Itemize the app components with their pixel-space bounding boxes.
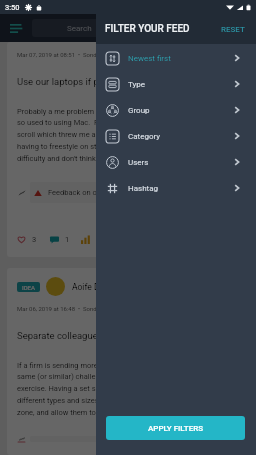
- button[interactable]: Category: [96, 123, 256, 149]
- button[interactable]: IDEA: [7, 268, 249, 455]
- button[interactable]: Group: [96, 97, 256, 123]
- staticText: Newest first: [128, 54, 171, 63]
- staticText: APPLY FILTERS: [148, 424, 204, 433]
- staticText: RESET: [221, 25, 245, 34]
- staticText: 3: [32, 235, 37, 244]
- staticText: 1: [65, 235, 70, 244]
- button[interactable]: Feedback on our pro: [30, 436, 241, 442]
- button[interactable]: APPLY FILTERS: [106, 416, 245, 440]
- button[interactable]: Users: [96, 149, 256, 175]
- button[interactable]: Newest first: [96, 45, 256, 71]
- staticText: Users: [128, 158, 149, 167]
- staticText: 3:50: [5, 3, 20, 12]
- button[interactable]: Mar 07, 2019 at 08:51 • Sonder: [7, 42, 249, 257]
- button[interactable]: Open navigation menu: [6, 18, 26, 38]
- button[interactable]: Feedback on our pro: [30, 182, 241, 203]
- staticText: Type: [128, 80, 146, 89]
- staticText: If a firm is sending more than same (or …: [17, 361, 115, 417]
- staticText: Separate colleagues in a: [17, 330, 121, 341]
- staticText: Use our laptops if possible: [17, 76, 130, 87]
- staticText: Category: [128, 132, 161, 141]
- button[interactable]: Type: [96, 71, 256, 97]
- button[interactable]: Hashtag: [96, 175, 256, 201]
- staticText: Mar 07, 2019 at 08:51 • Sonder: [17, 51, 102, 58]
- staticText: IDEA: [22, 284, 35, 291]
- staticText: Aoife Doyl: [72, 282, 111, 292]
- staticText: Feedback on our pro: [48, 188, 117, 197]
- staticText: Mar 06, 2019 at 16:48 • Sonder: [17, 305, 102, 312]
- staticText: FILTER YOUR FEED: [105, 23, 190, 35]
- staticText: Probably a me problem but I am so used t…: [17, 107, 124, 163]
- staticText: Hashtag: [128, 184, 159, 193]
- button[interactable]: Search: [32, 19, 127, 37]
- button[interactable]: RESET: [218, 21, 248, 38]
- staticText: Search: [67, 24, 92, 33]
- button[interactable]: IDEA: [17, 282, 40, 292]
- staticText: Group: [128, 106, 150, 115]
